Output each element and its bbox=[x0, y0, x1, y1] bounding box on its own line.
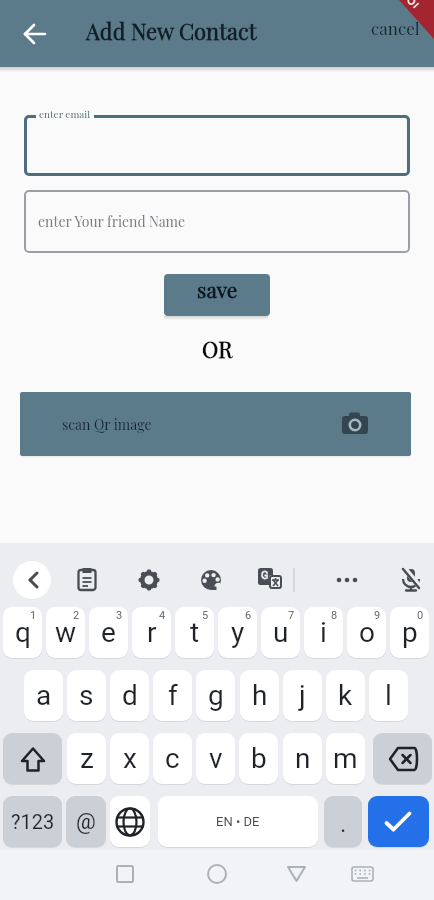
button[interactable]: a bbox=[24, 670, 63, 721]
staticText: save bbox=[197, 275, 238, 303]
staticText: 2 bbox=[73, 609, 80, 622]
staticText: 4 bbox=[159, 609, 166, 622]
staticText: @ bbox=[76, 809, 96, 835]
staticText: z bbox=[80, 742, 94, 775]
staticText: j bbox=[299, 679, 306, 712]
button[interactable] bbox=[373, 733, 432, 784]
button[interactable]: s bbox=[67, 670, 106, 721]
staticText: . bbox=[340, 810, 347, 838]
button[interactable] bbox=[197, 566, 225, 594]
staticText: cancel bbox=[371, 17, 420, 40]
staticText: k bbox=[338, 679, 353, 712]
button[interactable]: i bbox=[304, 607, 343, 658]
button[interactable] bbox=[333, 566, 361, 594]
button[interactable] bbox=[24, 115, 410, 176]
staticText: x bbox=[123, 742, 137, 775]
button[interactable]: r bbox=[132, 607, 171, 658]
staticText: 3 bbox=[116, 609, 123, 622]
staticText: 0 bbox=[417, 609, 424, 622]
staticText: 1 bbox=[30, 609, 37, 622]
staticText: scan Qr image bbox=[62, 415, 152, 434]
button[interactable]: l bbox=[369, 670, 408, 721]
staticText: e bbox=[101, 616, 116, 649]
staticText: ?123 bbox=[11, 810, 55, 833]
staticText: u bbox=[273, 616, 289, 649]
button[interactable]: c bbox=[153, 733, 192, 784]
staticText: l bbox=[385, 679, 392, 712]
button[interactable]: k bbox=[326, 670, 365, 721]
button[interactable] bbox=[13, 561, 51, 599]
button[interactable]: t bbox=[175, 607, 214, 658]
staticText: a bbox=[36, 679, 52, 712]
button[interactable] bbox=[14, 13, 56, 55]
button[interactable]: x bbox=[110, 733, 149, 784]
button[interactable]: v bbox=[196, 733, 235, 784]
staticText: m bbox=[333, 742, 358, 775]
button[interactable]: m bbox=[326, 733, 365, 784]
button[interactable]: enter Your friend Name bbox=[24, 190, 410, 253]
staticText: v bbox=[209, 742, 223, 775]
button[interactable]: w bbox=[46, 607, 85, 658]
button[interactable]: g bbox=[196, 670, 235, 721]
staticText: f bbox=[168, 679, 178, 712]
staticText: 9 bbox=[374, 609, 381, 622]
button[interactable]: b bbox=[239, 733, 278, 784]
staticText: p bbox=[402, 616, 418, 649]
button[interactable] bbox=[73, 566, 101, 594]
button[interactable]: d bbox=[110, 670, 149, 721]
button[interactable] bbox=[195, 852, 239, 896]
staticText: h bbox=[252, 679, 268, 712]
staticText: q bbox=[15, 616, 31, 649]
button[interactable]: h bbox=[240, 670, 279, 721]
button[interactable]: y bbox=[218, 607, 257, 658]
button[interactable] bbox=[340, 852, 384, 896]
staticText: r bbox=[147, 616, 157, 649]
button[interactable]: n bbox=[283, 733, 322, 784]
button[interactable] bbox=[110, 796, 150, 847]
button[interactable]: z bbox=[67, 733, 106, 784]
staticText: t bbox=[190, 616, 200, 649]
button[interactable]: p bbox=[390, 607, 429, 658]
staticText: b bbox=[251, 742, 267, 775]
staticText: n bbox=[295, 742, 311, 775]
staticText: y bbox=[231, 616, 245, 649]
staticText: OR bbox=[202, 334, 233, 363]
button[interactable]: e bbox=[89, 607, 128, 658]
staticText: o bbox=[359, 616, 375, 649]
button[interactable]: save bbox=[164, 274, 270, 316]
button[interactable]: cancel bbox=[371, 17, 420, 40]
button[interactable] bbox=[368, 796, 429, 847]
staticText: Add New Contact bbox=[86, 16, 257, 45]
staticText: s bbox=[79, 679, 94, 712]
staticText: 6 bbox=[245, 609, 252, 622]
staticText: c bbox=[165, 742, 180, 775]
button[interactable] bbox=[135, 566, 163, 594]
staticText: G bbox=[261, 569, 269, 582]
button[interactable] bbox=[103, 852, 147, 896]
staticText: enter email bbox=[39, 107, 91, 120]
button[interactable]: scan Qr image bbox=[20, 392, 411, 456]
staticText: g bbox=[208, 679, 224, 712]
staticText: EN • DE bbox=[216, 814, 260, 829]
staticText: 5 bbox=[202, 609, 209, 622]
button[interactable]: o bbox=[347, 607, 386, 658]
button[interactable] bbox=[3, 733, 62, 784]
button[interactable]: q bbox=[3, 607, 42, 658]
staticText: w bbox=[55, 616, 77, 649]
button[interactable]: . bbox=[324, 796, 362, 847]
button[interactable]: @ bbox=[66, 796, 106, 847]
button[interactable] bbox=[397, 566, 425, 594]
button[interactable]: u bbox=[261, 607, 300, 658]
button[interactable]: ?123 bbox=[3, 796, 62, 847]
button[interactable] bbox=[274, 852, 318, 896]
staticText: 7 bbox=[288, 609, 295, 622]
staticText: 8 bbox=[331, 609, 338, 622]
staticText: d bbox=[122, 679, 138, 712]
button[interactable]: f bbox=[153, 670, 192, 721]
staticText: enter Your friend Name bbox=[38, 212, 186, 231]
button[interactable]: j bbox=[283, 670, 322, 721]
button[interactable]: EN • DE bbox=[158, 796, 318, 847]
staticText: i bbox=[320, 616, 327, 649]
button[interactable]: G bbox=[257, 565, 285, 593]
